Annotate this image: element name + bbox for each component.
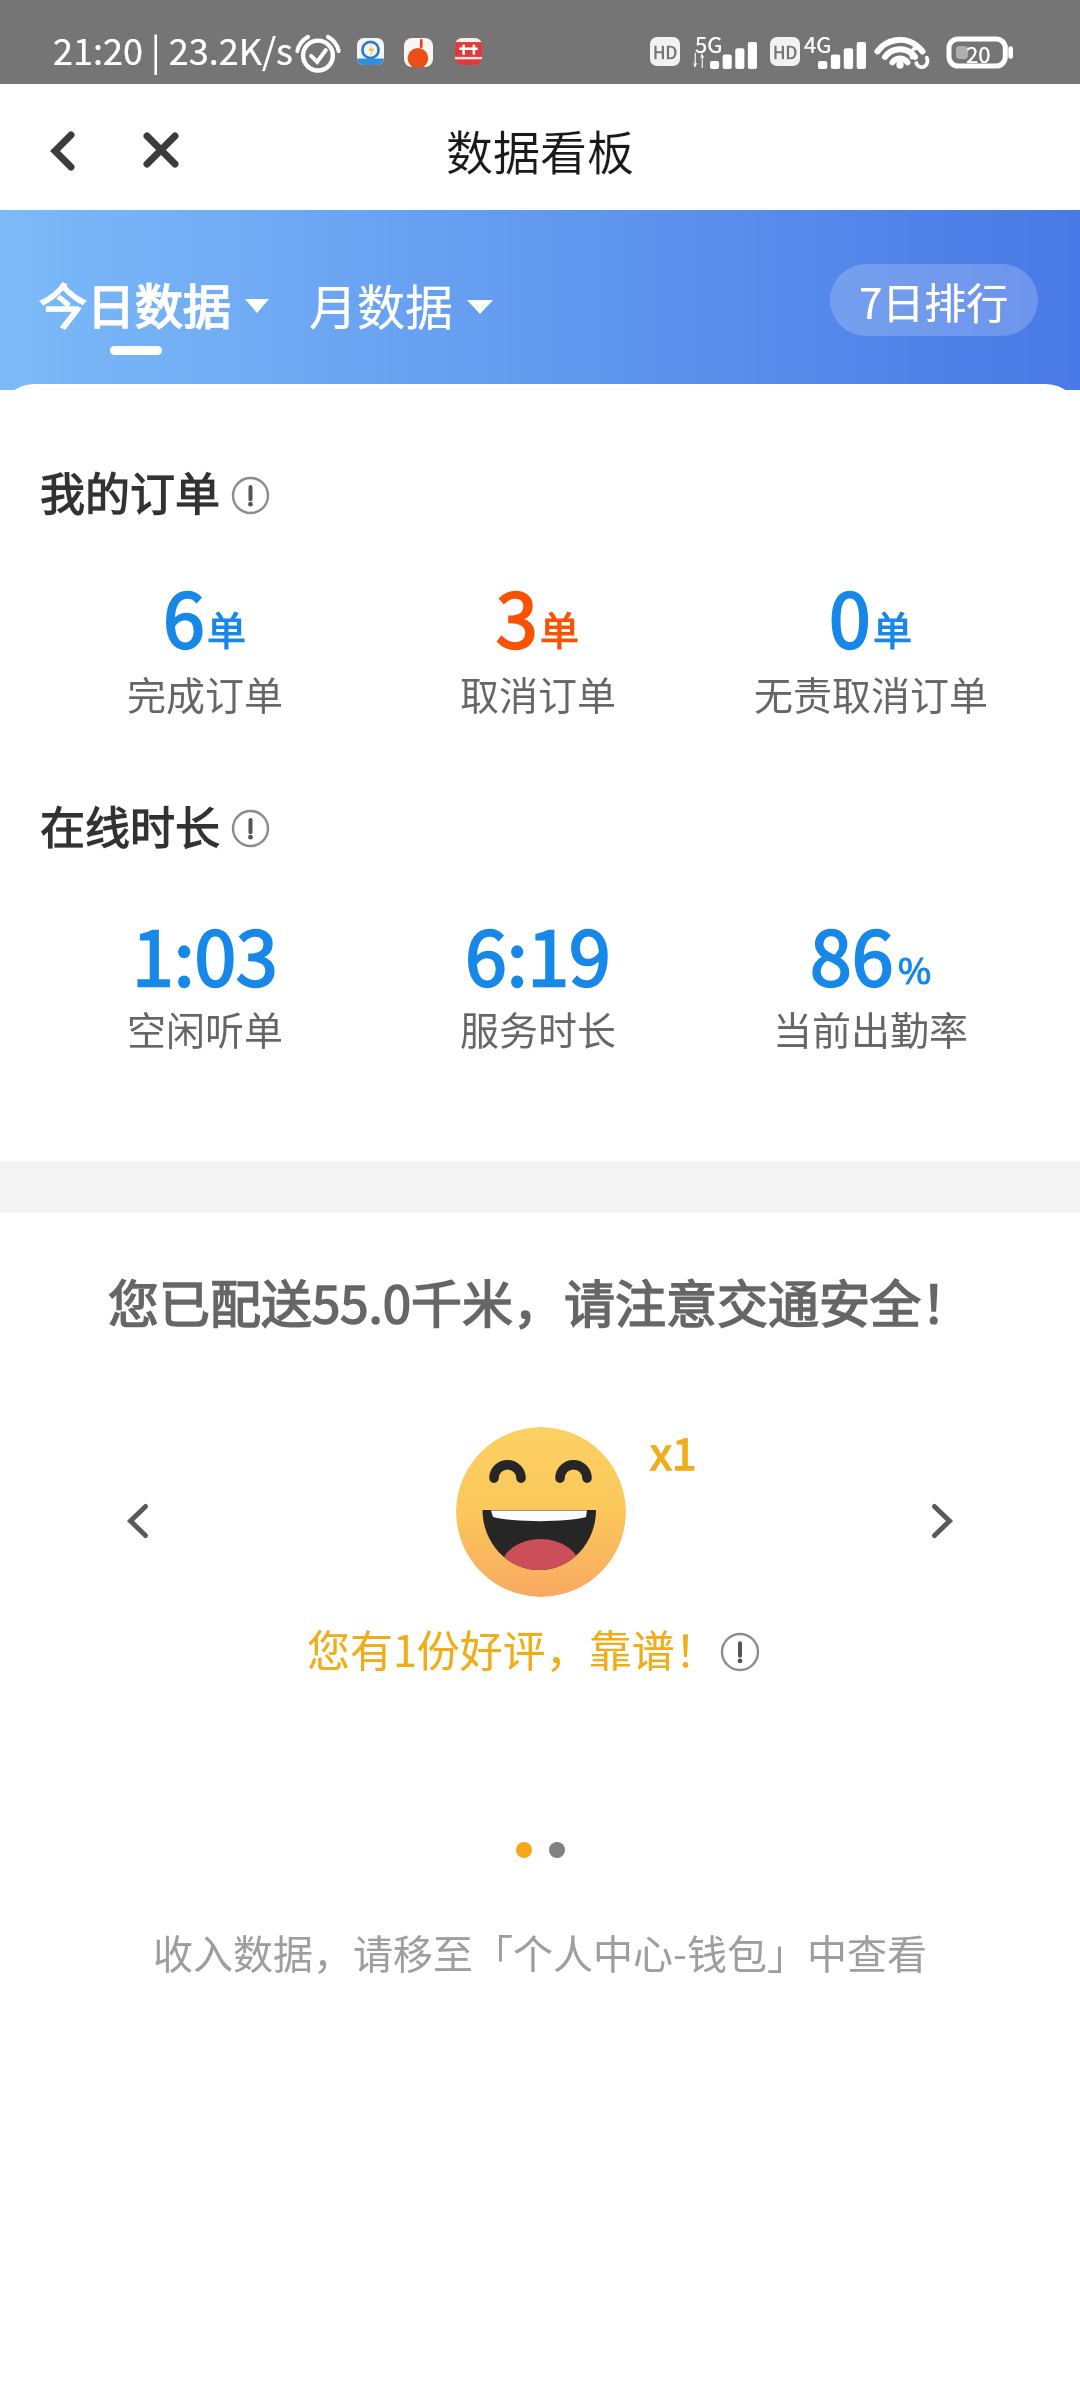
button[interactable]: Next <box>910 1489 974 1553</box>
staticText: 您已配送55.0千米，请注意交通安全！ <box>108 1264 973 1338</box>
staticText: 当前出勤率 <box>773 1000 969 1056</box>
button[interactable]: 今日数据 <box>18 260 289 346</box>
staticText: 取消订单 <box>460 665 617 721</box>
staticText: 数据看板 <box>446 115 634 183</box>
staticText: 21:20 | 23.2K/s <box>53 23 293 75</box>
staticText: 您有1份好评，靠谱！ <box>307 1617 718 1679</box>
staticText: 7日排行 <box>859 270 1009 331</box>
button[interactable]: Back <box>30 118 96 184</box>
staticText: 月数据 <box>309 269 454 339</box>
staticText: 0 <box>829 561 871 670</box>
staticText: 4G <box>804 27 832 59</box>
staticText: 在线时长 <box>40 793 221 858</box>
staticText: HD <box>653 39 678 64</box>
button[interactable]: Info <box>232 810 269 847</box>
button[interactable]: Info <box>721 1633 759 1671</box>
staticText: 86 <box>810 899 894 1008</box>
staticText: 无责取消订单 <box>754 665 989 721</box>
staticText: 6 <box>163 561 205 670</box>
staticText: 空闲听单 <box>127 1000 284 1056</box>
staticText: 单 <box>540 600 580 656</box>
staticText: 完成订单 <box>127 665 284 721</box>
staticText: 6:19 <box>465 899 611 1008</box>
staticText: 5G <box>695 27 723 59</box>
button[interactable]: 7日排行 <box>830 264 1038 336</box>
button[interactable]: Info <box>232 477 269 514</box>
staticText: 1:03 <box>132 899 278 1008</box>
button[interactable]: Close <box>128 117 194 183</box>
staticText: % <box>898 942 932 994</box>
staticText: x1 <box>650 1419 697 1483</box>
staticText: 今日数据 <box>39 268 232 338</box>
staticText: HD <box>773 39 798 64</box>
button[interactable]: 月数据 <box>288 261 513 347</box>
button[interactable]: Rating emoji <box>456 1427 626 1597</box>
staticText: 我的订单 <box>40 459 221 524</box>
staticText: 20 <box>966 37 991 68</box>
button[interactable]: Page 2 <box>539 1832 575 1868</box>
staticText: 单 <box>207 600 247 656</box>
button[interactable]: Page 1 <box>506 1832 542 1868</box>
staticText: 单 <box>873 600 913 656</box>
staticText: 3 <box>496 561 538 670</box>
button[interactable]: Previous <box>106 1489 170 1553</box>
staticText: 服务时长 <box>460 1000 617 1056</box>
staticText: 收入数据，请移至「个人中心-钱包」中查看 <box>153 1923 927 1981</box>
